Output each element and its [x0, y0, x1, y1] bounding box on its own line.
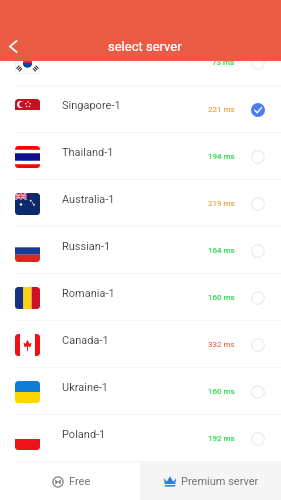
button[interactable]: Ukraine-1	[0, 368, 281, 415]
staticText: Singapore-1	[62, 99, 121, 112]
staticText: Australia-1	[62, 193, 115, 206]
staticText: Thailand-1	[62, 146, 114, 159]
staticText: 221 ms	[208, 105, 235, 114]
button[interactable]: Romania-1	[0, 274, 281, 321]
staticText: Poland-1	[62, 428, 106, 441]
staticText: Romania-1	[62, 287, 115, 300]
staticText: 160 ms	[208, 387, 235, 396]
button[interactable]: Thailand-1	[0, 133, 281, 180]
staticText: 73 ms	[212, 58, 235, 67]
staticText: 332 ms	[208, 340, 235, 349]
staticText: Free	[69, 475, 91, 488]
button[interactable]: Premium server	[140, 462, 281, 500]
button[interactable]: 73 ms	[0, 39, 281, 86]
button[interactable]: Singapore-1	[0, 86, 281, 133]
button[interactable]: Back	[1, 34, 25, 58]
staticText: Premium server	[181, 475, 259, 488]
staticText: Ukraine-1	[62, 381, 109, 394]
button[interactable]: Free	[0, 462, 140, 500]
staticText: 192 ms	[208, 434, 235, 443]
staticText: select server	[108, 39, 182, 54]
staticText: Russian-1	[62, 240, 111, 253]
button[interactable]: Russian-1	[0, 227, 281, 274]
button[interactable]: Australia-1	[0, 180, 281, 227]
staticText: 194 ms	[208, 152, 235, 161]
staticText: 160 ms	[208, 293, 235, 302]
button[interactable]: Poland-1	[0, 415, 281, 462]
button[interactable]: Canada-1	[0, 321, 281, 368]
staticText: 219 ms	[208, 199, 235, 208]
staticText: Canada-1	[62, 334, 109, 347]
staticText: 164 ms	[208, 246, 235, 255]
